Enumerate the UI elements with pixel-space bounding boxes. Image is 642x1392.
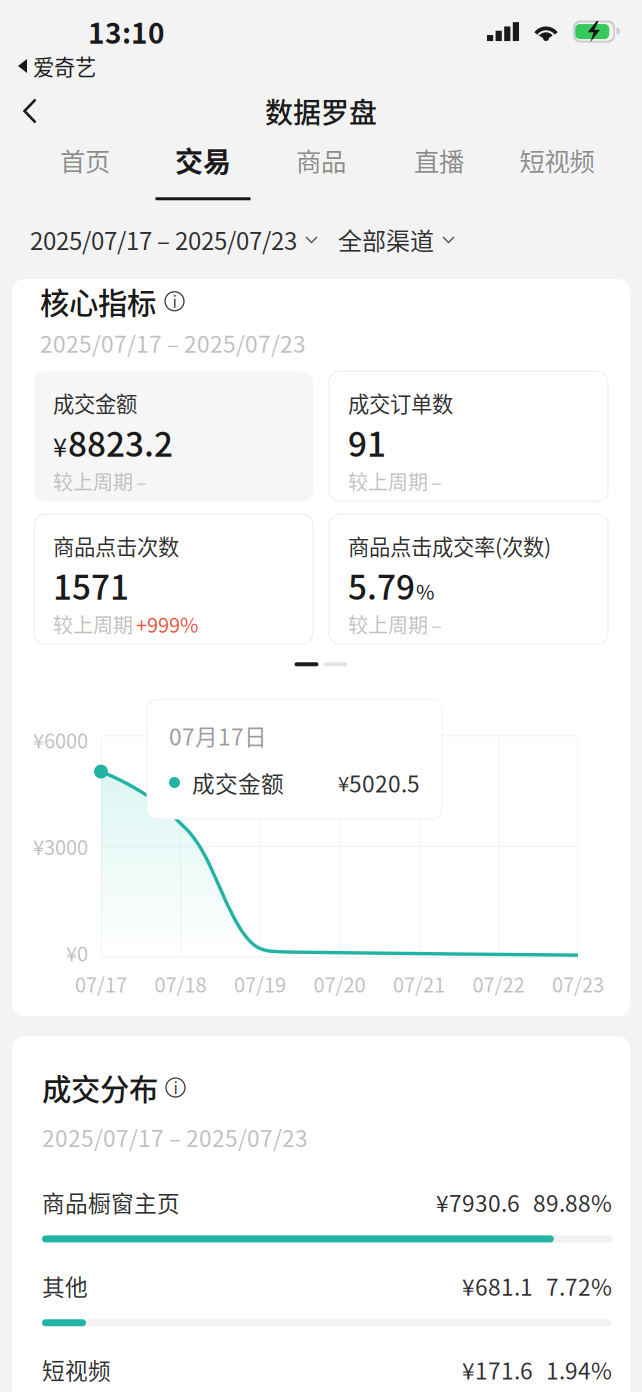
button[interactable]: 商品点击成交率(次数) xyxy=(329,514,608,644)
staticText: 首页 xyxy=(60,142,110,178)
staticText: i xyxy=(173,1075,177,1099)
staticText: 2025/07/17 – 2025/07/23 xyxy=(30,222,297,257)
staticText: +999% xyxy=(136,609,198,638)
staticText: 07/23 xyxy=(552,969,604,998)
staticText: 89.88% xyxy=(533,1186,612,1218)
staticText: ¥3000 xyxy=(33,832,88,861)
staticText: 2025/07/17 – 2025/07/23 xyxy=(42,1121,308,1154)
staticText: 1.94% xyxy=(546,1353,612,1386)
staticText: 07/17 xyxy=(75,969,127,998)
staticText: 成交分布 xyxy=(42,1066,158,1109)
button[interactable]: 成交订单数 xyxy=(329,371,608,501)
staticText: ¥171.6 xyxy=(462,1353,533,1386)
staticText: 成交金额 xyxy=(53,387,137,418)
staticText: ¥681.1 xyxy=(462,1269,533,1302)
button[interactable]: 商品 xyxy=(262,136,380,206)
staticText: 7.72% xyxy=(546,1269,612,1302)
button[interactable]: 返回 xyxy=(0,90,54,132)
staticText: 其他 xyxy=(42,1269,88,1302)
staticText: 商品橱窗主页 xyxy=(42,1186,180,1218)
staticText: ¥ xyxy=(53,427,67,464)
staticText: 8823.2 xyxy=(68,418,173,466)
staticText: 短视频 xyxy=(42,1353,111,1386)
button[interactable]: 全部渠道 xyxy=(338,222,455,257)
staticText: 商品点击次数 xyxy=(53,530,179,561)
staticText: 1571 xyxy=(53,561,129,609)
staticText: 5.79 xyxy=(348,561,415,609)
staticText: – xyxy=(431,466,442,495)
staticText: 较上周期 xyxy=(53,609,133,638)
staticText: 成交订单数 xyxy=(348,387,453,418)
staticText: 07/18 xyxy=(155,969,207,998)
staticText: 较上周期 xyxy=(348,466,428,495)
staticText: – xyxy=(136,466,147,495)
button[interactable]: 成交金额 xyxy=(34,371,313,501)
button[interactable]: 首页 xyxy=(26,136,144,206)
staticText: 07/21 xyxy=(393,969,445,998)
staticText: 07/20 xyxy=(314,969,366,998)
staticText: 全部渠道 xyxy=(338,222,434,257)
staticText: 5020.5 xyxy=(349,766,420,799)
staticText: 2025/07/17 – 2025/07/23 xyxy=(40,326,306,359)
button[interactable]: 2025/07/17 – 2025/07/23 xyxy=(30,222,318,257)
button[interactable]: 直播 xyxy=(380,136,498,206)
staticText: 直播 xyxy=(414,142,464,178)
staticText: 较上周期 xyxy=(53,466,133,495)
staticText: 短视频 xyxy=(519,142,594,178)
staticText: 较上周期 xyxy=(348,609,428,638)
staticText: ¥6000 xyxy=(33,725,88,754)
staticText: i xyxy=(172,289,176,312)
button[interactable]: 商品点击次数 xyxy=(34,514,313,644)
staticText: 07月17日 xyxy=(169,719,267,752)
button[interactable]: 短视频 xyxy=(498,136,616,206)
staticText: 核心指标 xyxy=(40,280,156,322)
staticText: 数据罗盘 xyxy=(265,91,377,131)
staticText: 91 xyxy=(348,418,386,466)
staticText: – xyxy=(431,609,442,638)
button[interactable]: 交易 xyxy=(144,134,262,208)
staticText: 交易 xyxy=(175,140,231,180)
staticText: 07/22 xyxy=(473,969,525,998)
staticText: 07/19 xyxy=(234,969,286,998)
staticText: ¥0 xyxy=(66,938,88,967)
staticText: ¥7930.6 xyxy=(436,1186,520,1218)
staticText: 成交金额 xyxy=(192,766,284,799)
staticText: 13:10 xyxy=(88,11,165,52)
staticText: % xyxy=(416,577,434,606)
staticText: ¥ xyxy=(338,768,349,797)
staticText: 商品点击成交率(次数) xyxy=(348,530,551,561)
staticText: 爱奇艺 xyxy=(33,51,96,81)
staticText: 商品 xyxy=(296,142,346,178)
